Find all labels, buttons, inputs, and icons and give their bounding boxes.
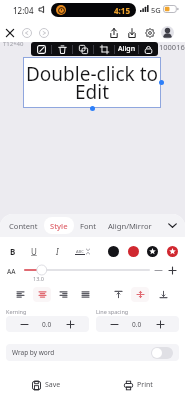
button[interactable]: Text decoration [72,243,92,259]
staticText: Kerning [6,308,27,315]
staticText: 12:04 [13,5,34,16]
staticText: 1000168 [159,42,185,52]
staticText: Double-click to Edit [23,61,161,105]
button[interactable]: Close [2,25,18,41]
button[interactable]: Collapse panel [164,217,181,234]
button[interactable]: Align centre [33,287,51,302]
button[interactable]: Line spacing increase [142,316,179,332]
button[interactable]: Align top [109,287,127,302]
button[interactable]: Align [115,42,138,56]
button[interactable]: Decrease size [151,263,165,277]
button[interactable]: Colour swatch [108,246,119,257]
button[interactable]: Edit [31,42,51,56]
staticText: Style [50,221,68,231]
staticText: 0.0 [42,320,52,329]
staticText: B [10,246,16,257]
button[interactable]: Align left [11,287,29,302]
staticText: 0.0 [132,320,142,329]
button[interactable]: Redo [36,25,52,41]
button[interactable]: Settings [142,25,158,41]
button[interactable]: Increase size [165,263,179,277]
staticText: ABC [76,249,84,254]
staticText: U [31,246,37,257]
staticText: Font [80,221,96,231]
button[interactable]: Duplicate [73,42,93,56]
staticText: Print [137,380,153,390]
staticText: Line spacing [96,308,129,315]
button[interactable]: Kerning increase [52,316,89,332]
staticText: 4:15 [114,5,130,16]
button[interactable]: Align right [54,287,72,302]
button[interactable]: Colour swatch [147,246,158,257]
staticText: Align [118,44,136,54]
button[interactable]: Line spacing decrease [96,316,132,332]
button[interactable]: Font [74,217,102,234]
staticText: I [56,246,59,257]
button[interactable]: Align middle [131,287,149,302]
button[interactable]: Lock [139,42,158,56]
button[interactable]: Wrap by word [6,344,179,361]
button[interactable]: Save [0,370,92,400]
button[interactable]: Crop [94,42,114,56]
button[interactable]: Content [3,217,44,234]
button[interactable]: Share [106,25,122,41]
button[interactable]: Justify [76,287,94,302]
button[interactable]: Import [124,25,140,41]
staticText: Wrap by word [12,348,55,357]
button[interactable]: Font size [25,264,149,276]
button[interactable]: Delete [52,42,72,56]
staticText: Content [9,221,38,231]
staticText: Save [45,380,61,390]
button[interactable]: Align bottom [154,287,172,302]
staticText: 13.0 [33,275,44,282]
button[interactable]: Italic [49,243,65,259]
staticText: AA [7,267,16,276]
button[interactable]: Print [92,370,185,400]
button[interactable]: Align/Mirror [102,217,158,234]
button[interactable]: Underline [26,243,42,259]
button[interactable]: Bold [5,243,21,259]
button[interactable]: Style [44,217,74,234]
button[interactable]: Undo [19,25,35,41]
button[interactable]: Kerning decrease [6,316,42,332]
button[interactable]: Profile [161,26,174,39]
staticText: 5G [151,5,161,15]
staticText: Align/Mirror [108,221,152,231]
button[interactable]: Colour swatch [128,246,139,257]
button[interactable]: Colour swatch [167,246,178,257]
staticText: T12*40 [3,40,24,48]
